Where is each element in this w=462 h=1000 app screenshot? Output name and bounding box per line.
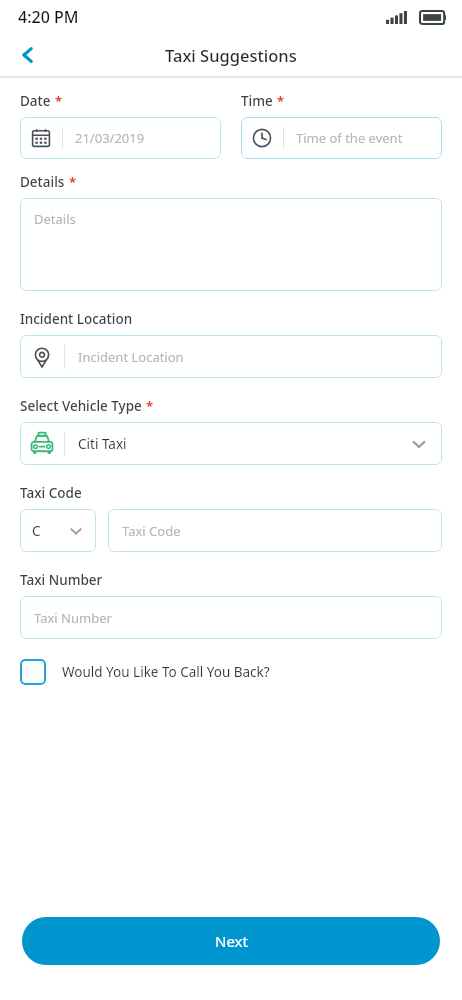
button[interactable]: Next [22, 917, 440, 965]
staticText: * [69, 173, 77, 191]
button[interactable]: Would You Like To Call You Back? [20, 659, 442, 685]
button[interactable]: Time of the event [241, 117, 442, 159]
button[interactable]: Citi Taxi [20, 422, 442, 465]
button[interactable]: Incident Location [20, 335, 442, 378]
staticText: * [277, 92, 285, 110]
staticText: Taxi Code [20, 484, 82, 502]
staticText: Date [20, 92, 51, 110]
staticText: C [32, 522, 41, 540]
button[interactable]: Taxi Number [20, 596, 442, 639]
staticText: Details [20, 173, 65, 191]
staticText: Time of the event [296, 129, 403, 147]
staticText: Would You Like To Call You Back? [62, 663, 270, 681]
staticText: Citi Taxi [78, 435, 127, 453]
staticText: Details [34, 210, 76, 228]
button[interactable]: 21/03/2019 [20, 117, 221, 159]
staticText: Time [241, 92, 273, 110]
staticText: Taxi Code [122, 522, 181, 540]
staticText: Incident Location [78, 348, 184, 366]
button[interactable]: Taxi Code [108, 509, 442, 552]
staticText: * [146, 397, 154, 415]
button[interactable]: Back [8, 35, 48, 75]
staticText: Taxi Number [34, 609, 112, 627]
staticText: Taxi Number [20, 571, 103, 589]
button[interactable]: C [20, 509, 96, 552]
staticText: 21/03/2019 [75, 129, 145, 147]
staticText: Select Vehicle Type [20, 397, 142, 415]
staticText: Taxi Suggestions [165, 44, 297, 66]
button[interactable]: Details [20, 198, 442, 291]
staticText: * [55, 92, 63, 110]
staticText: Next [215, 931, 248, 951]
staticText: 4:20 PM [18, 6, 79, 28]
staticText: Incident Location [20, 310, 133, 328]
